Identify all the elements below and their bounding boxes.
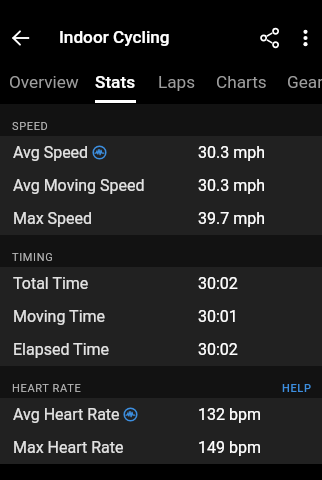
staticText: Stats: [95, 72, 136, 92]
staticText: Total Time: [13, 274, 89, 293]
staticText: 149 bpm: [198, 438, 261, 457]
button[interactable]: Max Heart Rate: [0, 431, 322, 464]
staticText: 30.3 mph: [198, 143, 265, 162]
staticText: HELP: [282, 382, 312, 395]
button[interactable]: Avg Heart Rate: [0, 398, 322, 431]
staticText: Avg Moving Speed: [13, 176, 145, 195]
staticText: 39.7 mph: [198, 209, 265, 228]
staticText: Charts: [216, 72, 267, 92]
button[interactable]: Avg Speed: [0, 136, 322, 169]
button[interactable]: Laps: [145, 71, 204, 104]
staticText: Overview: [9, 72, 79, 92]
staticText: 132 bpm: [198, 405, 261, 424]
button[interactable]: Share: [252, 20, 288, 56]
button[interactable]: Gear: [275, 71, 322, 104]
staticText: 30:02: [198, 274, 238, 293]
button[interactable]: More options: [288, 20, 322, 56]
staticText: HEART RATE: [12, 382, 82, 395]
staticText: 30.3 mph: [198, 176, 265, 195]
staticText: SPEED: [12, 120, 49, 133]
staticText: Elapsed Time: [13, 340, 110, 359]
staticText: Laps: [158, 72, 196, 92]
staticText: Indoor Cycling: [59, 27, 170, 47]
button[interactable]: Total Time: [0, 267, 322, 300]
staticText: 30:01: [198, 307, 238, 326]
staticText: Avg Speed: [13, 143, 89, 162]
staticText: Max Speed: [13, 209, 93, 228]
staticText: Max Heart Rate: [13, 438, 124, 457]
button[interactable]: Elapsed Time: [0, 333, 322, 366]
staticText: Avg Heart Rate: [13, 405, 120, 424]
button[interactable]: HELP: [266, 374, 322, 398]
staticText: Gear: [287, 72, 322, 92]
staticText: Moving Time: [13, 307, 106, 326]
button[interactable]: Back: [3, 20, 39, 56]
button[interactable]: Moving Time: [0, 300, 322, 333]
button[interactable]: Avg Moving Speed: [0, 169, 322, 202]
button[interactable]: Max Speed: [0, 202, 322, 235]
staticText: 30:02: [198, 340, 238, 359]
button[interactable]: Overview: [0, 71, 85, 104]
button[interactable]: Stats: [85, 71, 145, 104]
staticText: TIMING: [12, 251, 54, 264]
button[interactable]: Charts: [204, 71, 275, 104]
